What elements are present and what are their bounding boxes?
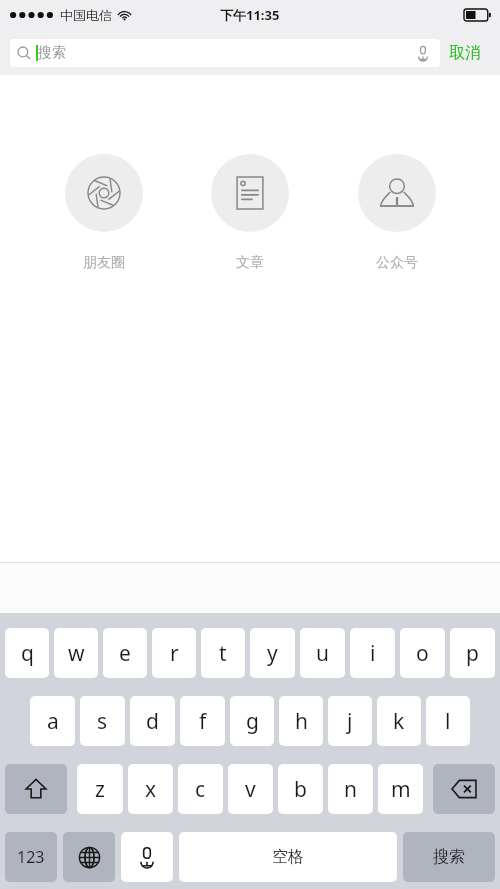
staticText: z	[95, 775, 105, 804]
button[interactable]: k	[377, 696, 421, 746]
button[interactable]: p	[450, 628, 495, 678]
staticText: 下午11:35	[220, 6, 280, 24]
button[interactable]: l	[426, 696, 470, 746]
staticText: w	[68, 639, 85, 668]
button[interactable]: a	[30, 696, 75, 746]
staticText: u	[316, 639, 329, 668]
button[interactable]: Shift	[5, 764, 67, 814]
staticText: g	[246, 707, 259, 736]
button[interactable]: 朋友圈	[61, 150, 147, 276]
button[interactable]: m	[378, 764, 423, 814]
button[interactable]: v	[228, 764, 273, 814]
button[interactable]: r	[152, 628, 196, 678]
button[interactable]: j	[328, 696, 372, 746]
button[interactable]: q	[5, 628, 49, 678]
staticText: h	[295, 707, 308, 736]
staticText: y	[267, 639, 278, 668]
staticText: 搜索	[38, 44, 66, 62]
button[interactable]: Backspace	[433, 764, 495, 814]
button[interactable]: Switch keyboard	[63, 832, 115, 882]
staticText: c	[195, 775, 206, 804]
staticText: k	[393, 707, 405, 736]
button[interactable]: h	[279, 696, 323, 746]
button[interactable]: 文章	[207, 150, 293, 276]
staticText: i	[370, 639, 376, 668]
staticText: b	[294, 775, 307, 804]
button[interactable]: x	[128, 764, 173, 814]
staticText: 中国电信	[60, 7, 112, 23]
button[interactable]: o	[400, 628, 445, 678]
button[interactable]: 取消	[440, 37, 490, 69]
button[interactable]: i	[350, 628, 395, 678]
staticText: e	[119, 639, 131, 668]
button[interactable]: 搜索	[403, 832, 495, 882]
staticText: 文章	[236, 254, 264, 272]
staticText: 取消	[449, 43, 481, 63]
staticText: x	[145, 775, 157, 804]
staticText: 搜索	[433, 847, 465, 867]
staticText: n	[344, 775, 357, 804]
button[interactable]: f	[180, 696, 225, 746]
button[interactable]: 空格	[179, 832, 397, 882]
staticText: j	[347, 707, 353, 736]
button[interactable]: n	[328, 764, 373, 814]
staticText: s	[97, 707, 108, 736]
button[interactable]: s	[80, 696, 125, 746]
staticText: m	[391, 775, 411, 804]
staticText: 空格	[272, 847, 304, 867]
button[interactable]: Voice search	[413, 43, 433, 63]
button[interactable]: d	[130, 696, 175, 746]
staticText: 朋友圈	[83, 254, 125, 272]
staticText: a	[47, 707, 59, 736]
button[interactable]: 搜索	[10, 39, 440, 67]
button[interactable]: z	[77, 764, 123, 814]
button[interactable]: w	[54, 628, 98, 678]
staticText: o	[416, 639, 429, 668]
button[interactable]: Dictation	[121, 832, 173, 882]
staticText: f	[199, 707, 207, 736]
staticText: l	[445, 707, 451, 736]
button[interactable]: c	[178, 764, 223, 814]
staticText: t	[219, 639, 227, 668]
button[interactable]: y	[250, 628, 295, 678]
button[interactable]: 公众号	[354, 150, 440, 276]
staticText: q	[21, 639, 34, 668]
button[interactable]: g	[230, 696, 274, 746]
button[interactable]: e	[103, 628, 147, 678]
staticText: d	[146, 707, 159, 736]
staticText: p	[466, 639, 479, 668]
button[interactable]: t	[201, 628, 245, 678]
staticText: r	[170, 639, 179, 668]
button[interactable]: 123	[5, 832, 57, 882]
button[interactable]: u	[300, 628, 345, 678]
staticText: v	[245, 775, 256, 804]
staticText: 123	[17, 846, 45, 868]
staticText: 公众号	[376, 254, 418, 272]
button[interactable]: b	[278, 764, 323, 814]
